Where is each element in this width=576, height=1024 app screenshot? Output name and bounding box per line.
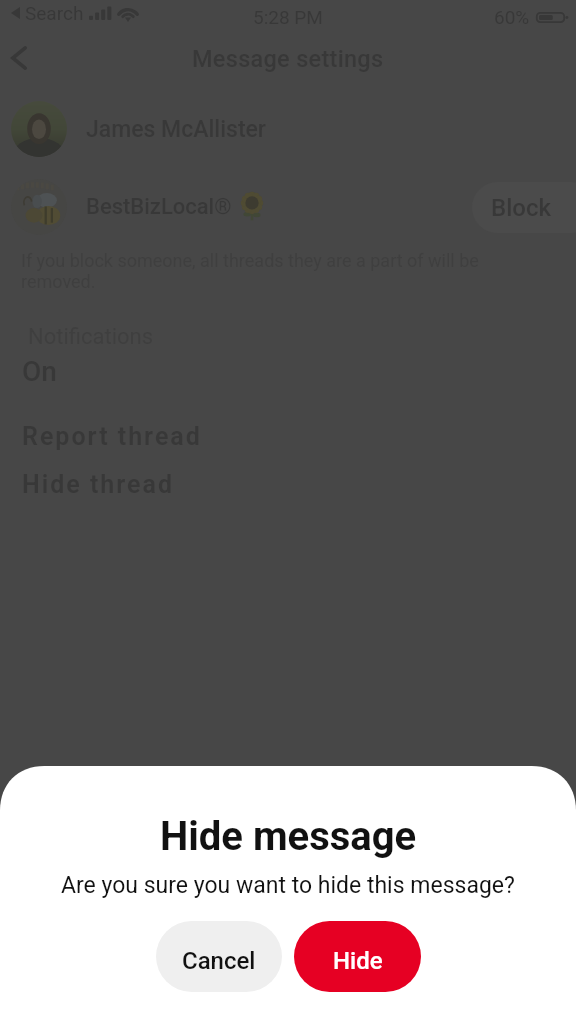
- staticText: On: [22, 355, 57, 388]
- button[interactable]: Block: [472, 182, 576, 233]
- staticText: Report thread: [22, 422, 202, 451]
- staticText: BestBizLocal®: [86, 194, 232, 220]
- button[interactable]: Cancel: [156, 921, 282, 992]
- button[interactable]: BestBizLocal®: [0, 179, 576, 235]
- button[interactable]: James McAllister: [0, 101, 576, 157]
- button[interactable]: Hide thread: [14, 464, 183, 505]
- staticText: Hide message: [160, 813, 417, 860]
- staticText: Message settings: [192, 45, 384, 73]
- button[interactable]: Back: [0, 39, 38, 77]
- staticText: 5:28 PM: [253, 6, 323, 28]
- staticText: Hide: [333, 947, 383, 975]
- staticText: 60%: [494, 6, 530, 28]
- staticText: Search: [25, 2, 84, 24]
- staticText: Block: [491, 194, 551, 222]
- button[interactable]: Hide: [294, 921, 421, 992]
- staticText: Hide thread: [22, 470, 175, 499]
- button[interactable]: Report thread: [14, 416, 210, 457]
- staticText: James McAllister: [86, 116, 266, 143]
- staticText: Are you sure you want to hide this messa…: [61, 872, 515, 899]
- staticText: Cancel: [182, 947, 256, 975]
